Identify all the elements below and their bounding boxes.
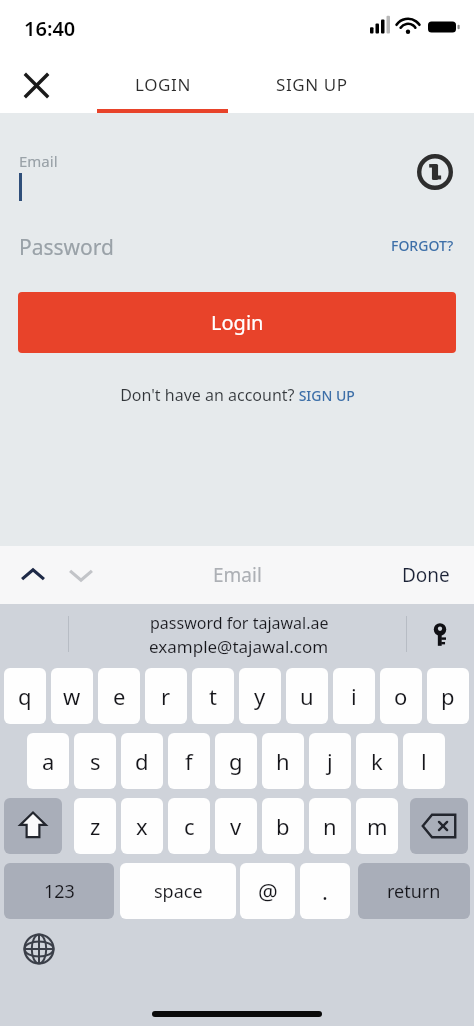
button[interactable]: Login bbox=[18, 292, 456, 353]
staticText: password for tajawal.ae bbox=[150, 612, 329, 634]
button[interactable]: password for tajawal.ae bbox=[149, 612, 329, 658]
staticText: FORGOT? bbox=[391, 236, 454, 255]
button[interactable]: y bbox=[239, 668, 281, 724]
button[interactable]: Next field bbox=[58, 552, 104, 598]
staticText: r bbox=[161, 681, 171, 711]
staticText: n bbox=[323, 811, 337, 841]
button[interactable]: j bbox=[309, 733, 351, 789]
staticText: k bbox=[371, 746, 383, 776]
button[interactable]: Backspace bbox=[410, 798, 468, 854]
button[interactable]: d bbox=[121, 733, 163, 789]
staticText: SIGN UP bbox=[276, 73, 348, 96]
staticText: 16:40 bbox=[24, 15, 76, 42]
staticText: Password bbox=[19, 233, 114, 262]
staticText: g bbox=[229, 746, 243, 776]
button[interactable]: x bbox=[121, 798, 163, 854]
staticText: Don't have an account? SIGN UP bbox=[120, 384, 355, 406]
button[interactable]: Previous field bbox=[10, 552, 56, 598]
staticText: c bbox=[184, 811, 195, 841]
button[interactable]: 123 bbox=[4, 863, 114, 919]
staticText: h bbox=[276, 746, 290, 776]
button[interactable]: @ bbox=[240, 863, 295, 919]
button[interactable]: r bbox=[145, 668, 187, 724]
button[interactable]: Change keyboard bbox=[14, 924, 64, 974]
staticText: space bbox=[154, 879, 203, 904]
button[interactable]: h bbox=[262, 733, 304, 789]
button[interactable]: s bbox=[74, 733, 116, 789]
button[interactable]: space bbox=[120, 863, 236, 919]
staticText: t bbox=[209, 681, 217, 711]
button[interactable]: 1Password bbox=[412, 149, 458, 195]
button[interactable]: a bbox=[27, 733, 69, 789]
staticText: o bbox=[394, 681, 408, 711]
staticText: b bbox=[276, 811, 290, 841]
staticText: e bbox=[113, 681, 126, 711]
staticText: 123 bbox=[44, 879, 75, 904]
button[interactable]: Close bbox=[12, 61, 60, 109]
staticText: l bbox=[421, 746, 427, 776]
staticText: . bbox=[322, 876, 328, 906]
staticText: example@tajawal.com bbox=[149, 635, 329, 658]
button[interactable]: g bbox=[215, 733, 257, 789]
staticText: s bbox=[90, 746, 101, 776]
staticText: Email bbox=[19, 151, 58, 171]
staticText: x bbox=[136, 811, 148, 841]
staticText: q bbox=[18, 681, 32, 711]
button[interactable]: v bbox=[215, 798, 257, 854]
button[interactable]: z bbox=[74, 798, 116, 854]
button[interactable]: f bbox=[168, 733, 210, 789]
staticText: return bbox=[387, 879, 441, 904]
staticText: z bbox=[90, 811, 101, 841]
button[interactable]: SIGN UP bbox=[242, 56, 382, 113]
button[interactable]: k bbox=[356, 733, 398, 789]
staticText: m bbox=[367, 811, 388, 841]
button[interactable]: FORGOT? bbox=[382, 225, 462, 265]
staticText: d bbox=[135, 746, 149, 776]
button[interactable]: return bbox=[358, 863, 470, 919]
staticText: j bbox=[327, 746, 333, 776]
button[interactable]: l bbox=[403, 733, 445, 789]
button[interactable]: i bbox=[333, 668, 375, 724]
button[interactable]: c bbox=[168, 798, 210, 854]
staticText: Done bbox=[402, 562, 450, 588]
button[interactable]: u bbox=[286, 668, 328, 724]
button[interactable]: Don't have an account? SIGN UP bbox=[0, 378, 474, 412]
button[interactable]: Passwords bbox=[420, 615, 460, 655]
button[interactable]: e bbox=[98, 668, 140, 724]
button[interactable]: o bbox=[380, 668, 422, 724]
staticText: w bbox=[63, 681, 81, 711]
staticText: LOGIN bbox=[135, 73, 191, 96]
staticText: a bbox=[42, 746, 55, 776]
button[interactable]: b bbox=[262, 798, 304, 854]
staticText: u bbox=[300, 681, 314, 711]
staticText: Email bbox=[213, 562, 262, 588]
button[interactable]: . bbox=[300, 863, 350, 919]
button[interactable]: q bbox=[4, 668, 46, 724]
button[interactable]: Done bbox=[386, 552, 466, 598]
button[interactable]: n bbox=[309, 798, 351, 854]
button[interactable]: t bbox=[192, 668, 234, 724]
staticText: Login bbox=[211, 309, 264, 336]
button[interactable]: m bbox=[356, 798, 398, 854]
staticText: p bbox=[441, 681, 455, 711]
button[interactable]: p bbox=[427, 668, 469, 724]
staticText: y bbox=[254, 681, 266, 711]
staticText: @ bbox=[258, 876, 278, 906]
staticText: v bbox=[230, 811, 242, 841]
button[interactable]: LOGIN bbox=[95, 56, 230, 113]
staticText: f bbox=[185, 746, 193, 776]
staticText: i bbox=[351, 681, 357, 711]
button[interactable]: w bbox=[51, 668, 93, 724]
button[interactable]: Shift bbox=[4, 798, 62, 854]
